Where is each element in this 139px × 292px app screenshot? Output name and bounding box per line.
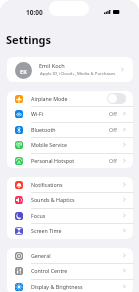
staticText: Mobile Service (31, 141, 68, 148)
staticText: Display & Brightness (31, 283, 83, 290)
button[interactable]: Screen Time (7, 223, 133, 238)
staticText: Off (109, 157, 117, 164)
button[interactable]: Sounds & Haptics (7, 192, 133, 207)
staticText: Emil Koch (39, 62, 65, 70)
button[interactable]: Mobile Service (7, 137, 133, 152)
button[interactable]: Control Centre (7, 263, 133, 278)
staticText: Settings (6, 32, 52, 47)
button[interactable]: EK (7, 57, 133, 82)
staticText: Control Centre (31, 267, 68, 274)
button[interactable]: Focus (7, 208, 133, 223)
staticText: Wi-Fi (31, 110, 44, 117)
button[interactable]: Wi-Fi (7, 106, 133, 121)
staticText: General (31, 252, 51, 259)
staticText: Off (109, 126, 117, 133)
button[interactable]: Display & Brightness (7, 279, 133, 292)
staticText: Off (109, 110, 117, 117)
staticText: Notifications (31, 181, 63, 188)
button[interactable]: Notifications (7, 177, 133, 192)
staticText: Focus (31, 212, 46, 219)
staticText: Airplane Mode (31, 95, 68, 102)
button[interactable]: Airplane Mode (7, 91, 133, 106)
staticText: 10:00 (26, 8, 43, 17)
staticText: Apple ID, iCloud+, Media & Purchases (40, 70, 116, 76)
staticText: Sounds & Haptics (31, 196, 75, 203)
staticText: Personal Hotspot (31, 157, 75, 164)
button[interactable]: General (7, 248, 133, 263)
staticText: Bluetooth (31, 126, 56, 133)
button[interactable]: Personal Hotspot (7, 153, 133, 168)
staticText: Screen Time (31, 227, 62, 234)
staticText: EK (20, 68, 28, 76)
button[interactable]: Bluetooth (7, 122, 133, 137)
